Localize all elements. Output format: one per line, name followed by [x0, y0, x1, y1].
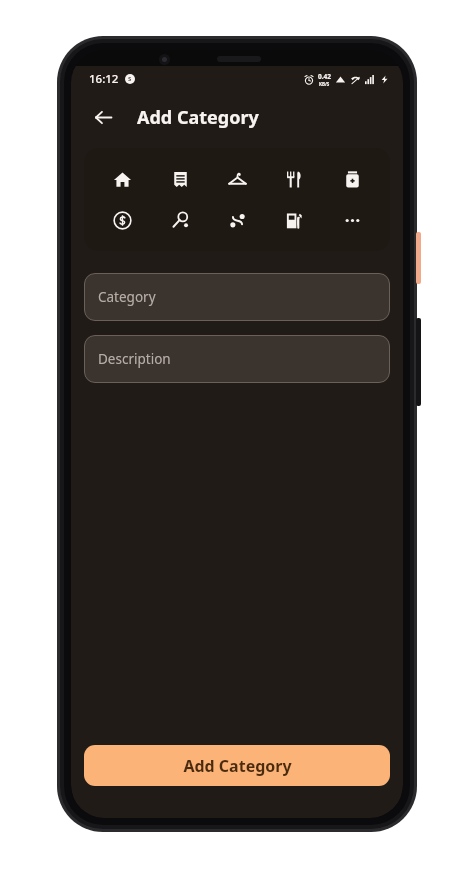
staticText: S	[128, 75, 132, 83]
button[interactable]: receipt	[161, 160, 199, 198]
button[interactable]: medicine	[333, 160, 371, 198]
staticText: 0.42	[318, 72, 331, 81]
staticText: KB/S	[319, 81, 330, 87]
button[interactable]: Add Category	[84, 745, 390, 786]
staticText: Add Category	[137, 105, 259, 130]
staticText: Category	[98, 288, 156, 306]
button[interactable]: Back	[83, 97, 123, 137]
button[interactable]: earbuds	[218, 201, 256, 239]
button[interactable]: Category	[84, 273, 390, 321]
button[interactable]: racket	[161, 201, 199, 239]
staticText: Add Category	[183, 755, 292, 777]
button[interactable]: hanger	[218, 160, 256, 198]
button[interactable]: home	[103, 160, 141, 198]
button[interactable]: more	[333, 201, 371, 239]
button[interactable]: fuel	[275, 201, 313, 239]
staticText: 16:12	[89, 71, 119, 87]
button[interactable]: coin	[103, 201, 141, 239]
staticText: Description	[98, 350, 171, 368]
button[interactable]: Description	[84, 335, 390, 383]
button[interactable]: food	[275, 160, 313, 198]
